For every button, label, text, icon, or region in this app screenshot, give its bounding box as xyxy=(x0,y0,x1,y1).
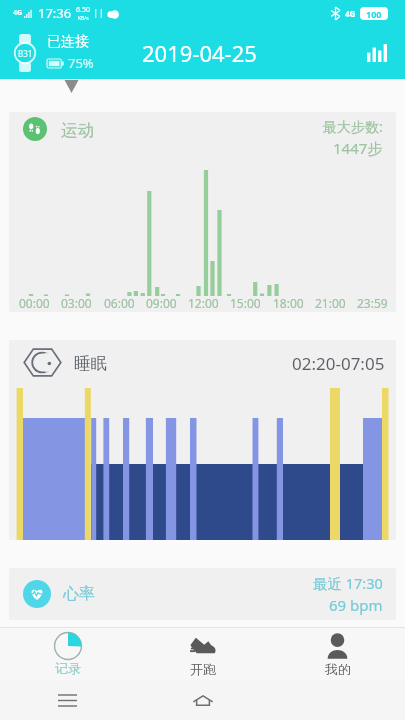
staticText: 02:20-07:05 xyxy=(292,352,385,375)
staticText: 17:36 xyxy=(38,4,72,22)
staticText: 睡眠 xyxy=(74,353,107,374)
staticText: 我的 xyxy=(325,661,351,677)
staticText: B31 xyxy=(18,48,33,59)
staticText: 15:00 xyxy=(230,295,261,311)
staticText: KB/s xyxy=(78,15,89,22)
button[interactable]: Menu xyxy=(0,680,135,720)
staticText: 18:00 xyxy=(273,295,304,311)
button[interactable]: 睡眠 xyxy=(9,340,396,540)
button[interactable]: 运动 xyxy=(9,112,396,312)
staticText: 最大步数: xyxy=(323,117,383,136)
staticText: 已连接 xyxy=(47,33,89,51)
staticText: 00:00 xyxy=(19,295,50,311)
button[interactable]: 开跑 xyxy=(135,632,270,677)
staticText: 1447步 xyxy=(333,138,383,158)
staticText: 4G xyxy=(13,8,23,18)
staticText: 2019-04-25 xyxy=(142,38,257,68)
staticText: 23:59 xyxy=(357,295,388,311)
staticText: 4G xyxy=(345,8,356,19)
staticText: 69 bpm xyxy=(329,595,383,615)
button[interactable]: Device B31 xyxy=(4,32,46,74)
staticText: 12:00 xyxy=(188,295,219,311)
button[interactable]: Home xyxy=(135,680,270,720)
staticText: 记录 xyxy=(55,660,81,676)
staticText: 21:00 xyxy=(315,295,346,311)
staticText: 最近 17:30 xyxy=(313,573,383,593)
button[interactable]: 记录 xyxy=(0,632,135,676)
staticText: 06:00 xyxy=(104,295,135,311)
staticText: 75% xyxy=(68,54,94,72)
staticText: 03:00 xyxy=(61,295,92,311)
button[interactable]: 心率 xyxy=(9,568,396,620)
staticText: 09:00 xyxy=(146,295,177,311)
staticText: 6.50 xyxy=(76,5,90,15)
button[interactable]: 我的 xyxy=(270,632,405,677)
staticText: 100 xyxy=(366,8,382,20)
staticText: 运动 xyxy=(61,120,94,141)
staticText: 开跑 xyxy=(190,661,216,677)
staticText: 心率 xyxy=(63,584,95,604)
button[interactable]: Statistics xyxy=(359,35,395,71)
